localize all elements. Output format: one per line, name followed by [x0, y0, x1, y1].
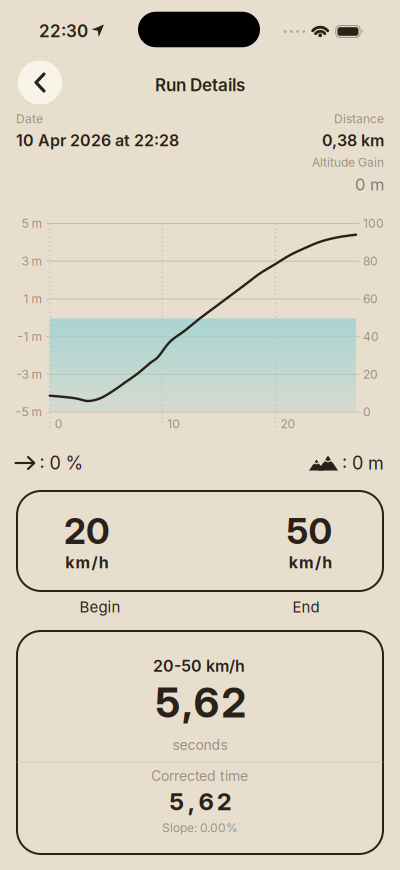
staticText: Begin [79, 598, 120, 616]
staticText: Slope: 0.00% [162, 821, 238, 835]
staticText: Date [16, 112, 43, 126]
staticText: 40 [363, 329, 379, 344]
staticText: 5 [169, 787, 184, 816]
staticText: -1 m [17, 329, 42, 344]
staticText: End [292, 598, 319, 616]
staticText: 20 [280, 417, 295, 431]
staticText: seconds [172, 736, 227, 753]
staticText: Distance [334, 112, 384, 126]
staticText: 50 [286, 509, 332, 553]
staticText: 100 [363, 216, 384, 231]
staticText: 5 m [21, 216, 42, 231]
staticText: Altitude Gain [312, 155, 384, 170]
staticText: 20-50 km/h [153, 656, 245, 676]
staticText: : 0 % [39, 452, 83, 474]
staticText: , [187, 787, 195, 816]
staticText: 6 [199, 787, 214, 816]
staticText: 10 [167, 417, 180, 431]
button[interactable]: Back [18, 60, 62, 104]
staticText: km/h [65, 553, 109, 572]
staticText: Corrected time [151, 767, 248, 784]
staticText: 0 [363, 405, 371, 419]
staticText: 2 [217, 787, 232, 816]
staticText: 80 [363, 254, 378, 268]
staticText: : 0 m [342, 452, 384, 474]
staticText: 60 [363, 292, 378, 306]
staticText: 10 Apr 2026 at 22:28 [16, 131, 179, 150]
staticText: 20 [64, 509, 110, 553]
staticText: Run Details [155, 75, 245, 95]
staticText: 0,38 km [322, 131, 384, 150]
staticText: 5,62 [156, 678, 246, 727]
staticText: -5 m [15, 405, 42, 419]
staticText: 0 m [355, 174, 384, 194]
staticText: -3 m [16, 367, 42, 381]
staticText: 22:30 [39, 21, 88, 41]
staticText: 1 m [23, 292, 42, 306]
staticText: 20 [363, 367, 378, 381]
staticText: 0 [55, 417, 63, 431]
staticText: km/h [289, 553, 332, 572]
staticText: 3 m [21, 254, 42, 268]
